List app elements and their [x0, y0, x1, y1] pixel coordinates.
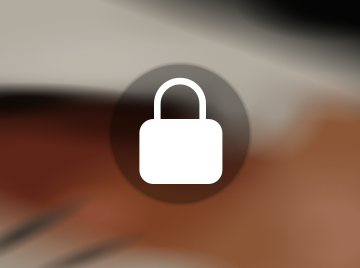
button[interactable]: Locked	[105, 59, 255, 209]
